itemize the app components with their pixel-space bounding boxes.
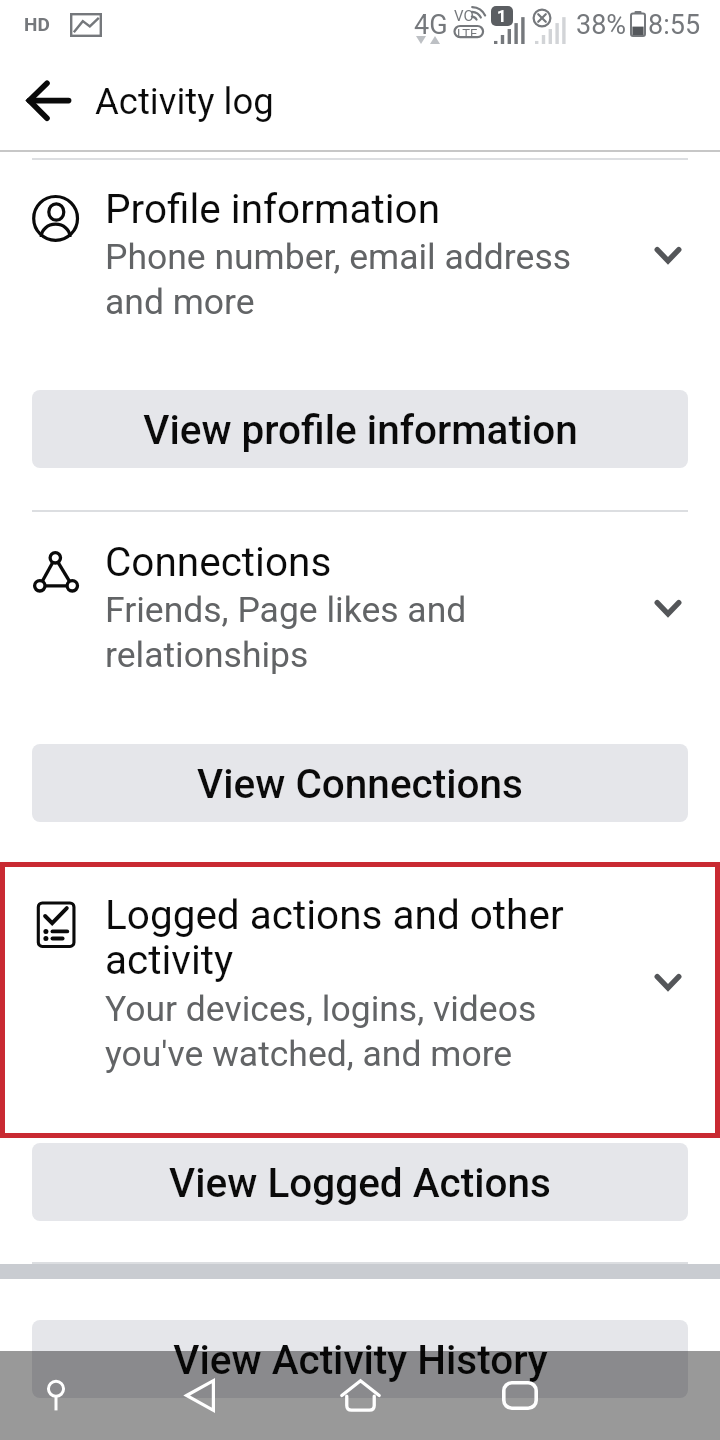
button[interactable] bbox=[0, 170, 720, 340]
staticText: 1 bbox=[497, 7, 507, 26]
staticText: HD bbox=[24, 13, 50, 35]
staticText: LTE bbox=[457, 26, 478, 41]
staticText: 8:55 bbox=[648, 9, 701, 41]
button[interactable]: View Logged Actions bbox=[32, 1143, 688, 1221]
button[interactable]: Recents bbox=[480, 1351, 560, 1440]
button[interactable]: View Connections bbox=[32, 744, 688, 822]
button[interactable]: Home bbox=[320, 1351, 400, 1440]
staticText: 4G bbox=[414, 9, 448, 41]
button[interactable]: View profile information bbox=[32, 390, 688, 468]
button[interactable]: Assistant bbox=[16, 1351, 96, 1440]
staticText: Connections bbox=[105, 538, 605, 585]
staticText: View Logged Actions bbox=[169, 1159, 551, 1206]
staticText: Your devices, logins, videos you've watc… bbox=[105, 988, 605, 1074]
button[interactable]: View Activity History bbox=[32, 1320, 688, 1398]
staticText: Friends, Page likes and relationships bbox=[105, 589, 605, 675]
staticText: Profile information bbox=[105, 185, 605, 232]
button[interactable]: Back bbox=[7, 65, 89, 145]
staticText: View Activity History bbox=[173, 1336, 548, 1383]
staticText: View Connections bbox=[197, 760, 523, 807]
button[interactable] bbox=[0, 875, 720, 1090]
button[interactable] bbox=[0, 522, 720, 692]
staticText: Logged actions and other activity bbox=[105, 891, 605, 984]
staticText: VO bbox=[454, 7, 474, 25]
button[interactable]: Back bbox=[160, 1351, 240, 1440]
staticText: 38% bbox=[576, 9, 627, 41]
staticText: View profile information bbox=[143, 406, 578, 453]
staticText: Activity log bbox=[95, 80, 274, 123]
staticText: Phone number, email address and more bbox=[105, 236, 605, 322]
